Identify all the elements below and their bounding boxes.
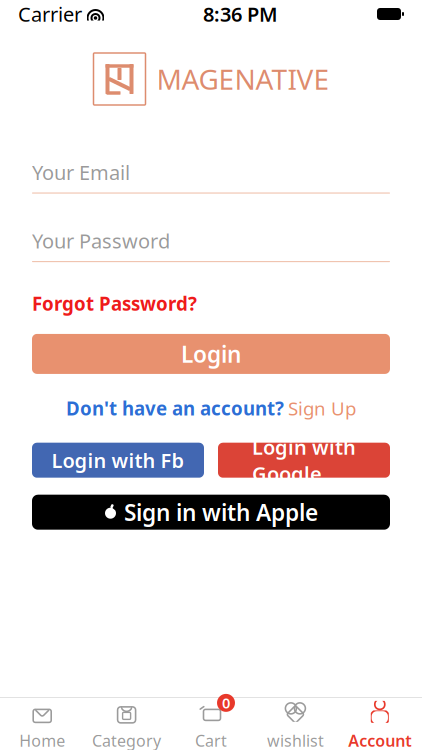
- button[interactable]: Category: [84, 691, 169, 750]
- button[interactable]: Login: [32, 334, 390, 374]
- staticText: Your Email: [32, 159, 130, 186]
- staticText: Forgot Password?: [32, 291, 197, 316]
- staticText: 8:36 PM: [203, 1, 278, 27]
- staticText: Don't have an account?: [66, 396, 284, 421]
- staticText: Account: [348, 730, 411, 750]
- staticText: Sign in with Apple: [124, 497, 318, 527]
- button[interactable]: wishlist: [253, 691, 338, 750]
- staticText: 0: [222, 693, 230, 713]
- button[interactable]: Home: [0, 691, 84, 750]
- staticText: Login with Fb: [51, 447, 184, 473]
- button[interactable]: Sign in with Apple: [32, 495, 390, 530]
- button[interactable]: Account: [338, 691, 422, 750]
- staticText: Login with Google: [252, 434, 356, 487]
- staticText: wishlist: [267, 730, 324, 750]
- staticText: Home: [19, 730, 65, 750]
- staticText: Category: [92, 730, 161, 750]
- staticText: Cart: [195, 730, 227, 750]
- button[interactable]: Login with Fb: [32, 443, 204, 478]
- staticText: Login: [181, 339, 241, 369]
- staticText: Your Password: [32, 228, 170, 254]
- staticText: Sign Up: [288, 396, 356, 421]
- staticText: MAGENATIVE: [156, 60, 329, 98]
- button[interactable]: Don't have an account?: [32, 392, 390, 425]
- button[interactable]: Login with Google: [218, 443, 390, 478]
- button[interactable]: Forgot Password?: [32, 289, 197, 318]
- button[interactable]: 0: [169, 691, 253, 750]
- staticText: Carrier: [18, 1, 82, 27]
